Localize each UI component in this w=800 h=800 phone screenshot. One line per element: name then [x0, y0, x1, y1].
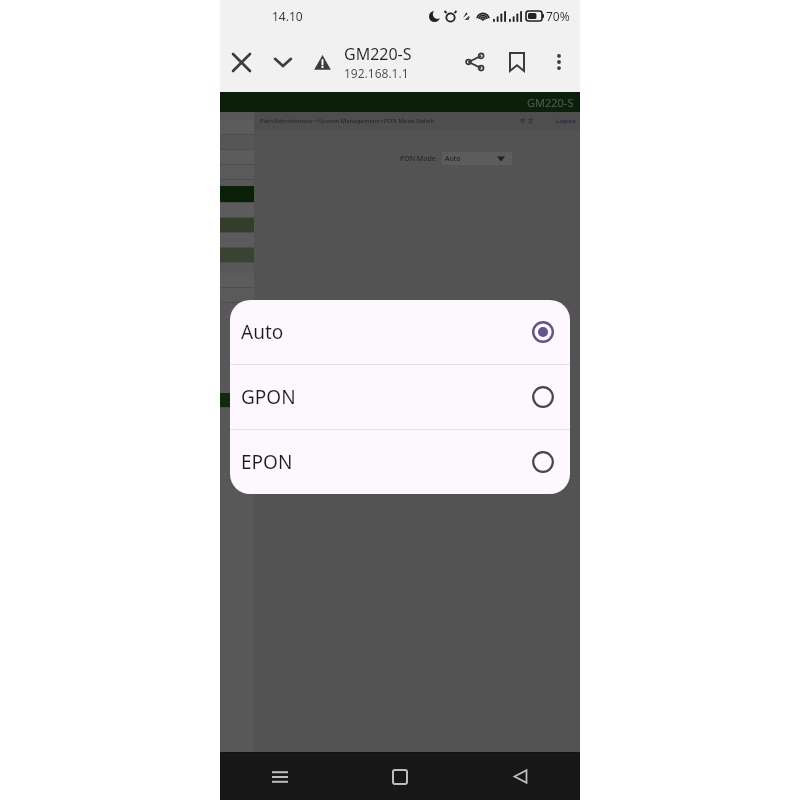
staticText: GPON [241, 384, 296, 410]
staticText: 192.168.1.1 [344, 65, 409, 81]
staticText: 中 文 [520, 117, 534, 125]
staticText: 70% [546, 8, 570, 24]
staticText: Logout [556, 117, 576, 125]
button[interactable]: Bookmark [496, 41, 538, 83]
staticText: PON Mode [400, 154, 436, 164]
staticText: GM220-S [527, 95, 574, 110]
button[interactable]: Connection is not secure [304, 44, 340, 80]
staticText: 14.10 [272, 8, 303, 24]
button[interactable]: EPON [230, 430, 570, 494]
button[interactable]: Expand [262, 41, 304, 83]
staticText: Auto [241, 319, 284, 345]
staticText: GM220-S [344, 43, 412, 65]
button[interactable]: Back [460, 753, 580, 800]
staticText: Auto [445, 154, 461, 164]
button[interactable]: GPON [230, 365, 570, 429]
button[interactable]: Recent apps [220, 753, 340, 800]
button[interactable]: More options [538, 41, 580, 83]
staticText: EPON [241, 449, 293, 475]
button[interactable]: Share [454, 41, 496, 83]
button[interactable]: Auto [230, 300, 570, 364]
button[interactable]: Close [220, 41, 262, 83]
staticText: Path:Administrator->System Management->P… [260, 117, 435, 125]
button[interactable]: Home [340, 753, 460, 800]
